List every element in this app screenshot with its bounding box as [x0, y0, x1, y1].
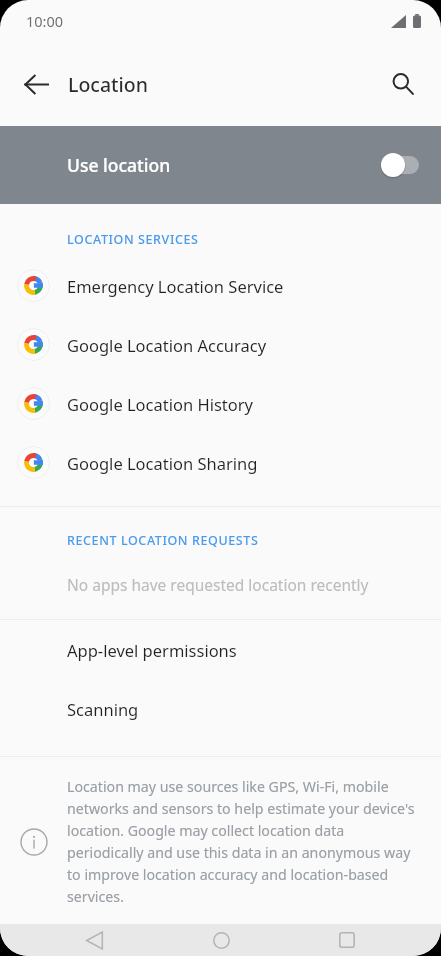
staticText: Google Location Sharing: [67, 452, 258, 474]
staticText: Use location: [67, 153, 171, 177]
staticText: Emergency Location Service: [67, 275, 284, 297]
staticText: Google Location History: [67, 393, 254, 415]
button[interactable]: Google Location History: [0, 374, 441, 433]
button[interactable]: Scanning: [0, 679, 441, 738]
staticText: RECENT LOCATION REQUESTS: [67, 532, 259, 549]
staticText: Location may use sources like GPS, Wi-Fi…: [67, 777, 415, 906]
button[interactable]: App-level permissions: [0, 620, 441, 679]
button[interactable]: Use location: [0, 126, 441, 204]
staticText: No apps have requested location recently: [67, 574, 369, 595]
button[interactable]: Google Location Accuracy: [0, 315, 441, 374]
button[interactable]: Emergency Location Service: [0, 256, 441, 315]
button[interactable]: Home: [189, 924, 253, 956]
staticText: App-level permissions: [67, 639, 237, 661]
staticText: Location: [68, 71, 148, 98]
staticText: Google Location Accuracy: [67, 334, 267, 356]
staticText: 10:00: [26, 11, 64, 31]
button[interactable]: Recent apps: [315, 924, 379, 956]
staticText: Scanning: [67, 698, 139, 720]
button[interactable]: Google Location Sharing: [0, 433, 441, 492]
staticText: LOCATION SERVICES: [67, 231, 199, 248]
button[interactable]: Back: [62, 924, 126, 956]
button[interactable]: Search: [377, 58, 429, 110]
button[interactable]: Back: [8, 56, 64, 112]
